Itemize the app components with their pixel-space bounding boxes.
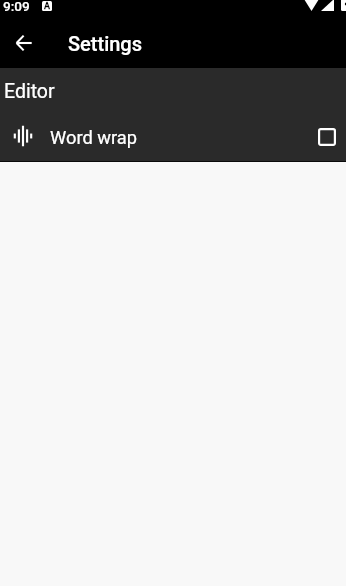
staticText: Settings — [68, 32, 143, 55]
staticText: Editor — [4, 80, 55, 103]
button[interactable]: Word wrap — [0, 98, 346, 161]
staticText: A — [44, 1, 50, 11]
staticText: Word wrap — [50, 127, 138, 148]
staticText: 9:09 — [3, 0, 30, 14]
button[interactable]: Navigate up — [7, 26, 40, 59]
button[interactable]: Word wrap checkbox — [307, 117, 346, 156]
